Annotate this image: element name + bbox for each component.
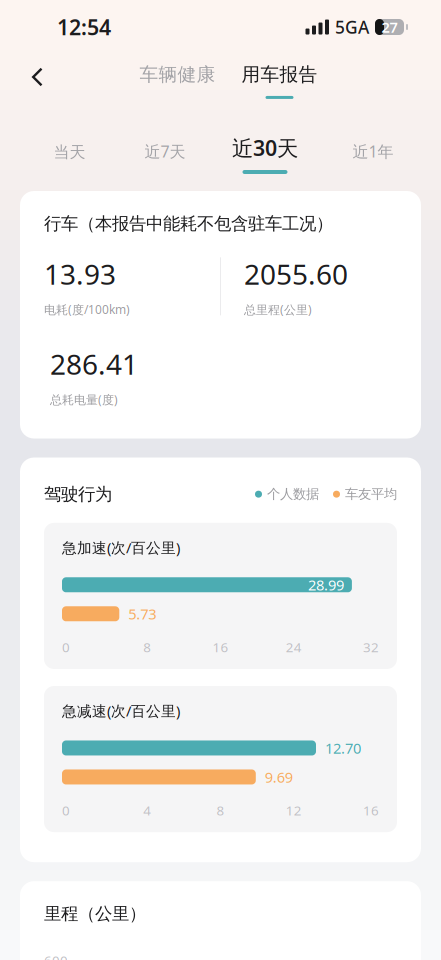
button[interactable]: 近30天: [210, 100, 320, 191]
staticText: 行车（本报告中能耗不包含驻车工况）: [44, 213, 333, 234]
staticText: 16: [363, 801, 379, 819]
staticText: 近7天: [144, 141, 185, 162]
staticText: 总里程(公里): [244, 301, 312, 317]
button[interactable]: 近7天: [120, 100, 210, 191]
staticText: 16: [212, 638, 228, 656]
staticText: 驾驶行为: [44, 483, 112, 505]
staticText: 286.41: [50, 345, 138, 383]
staticText: 12: [286, 801, 302, 819]
staticText: 27: [381, 17, 397, 37]
staticText: 4: [143, 801, 151, 819]
staticText: 28.99: [308, 575, 344, 595]
staticText: 5GA: [335, 15, 369, 38]
staticText: 0: [62, 801, 70, 819]
staticText: 当天: [53, 142, 85, 162]
staticText: 电耗(度/100km): [44, 301, 130, 317]
staticText: 0: [62, 638, 70, 656]
staticText: 600: [44, 951, 68, 960]
staticText: 车友平均: [345, 486, 397, 502]
staticText: 32: [363, 638, 379, 656]
staticText: 用车报告: [241, 63, 317, 86]
staticText: 里程（公里）: [44, 903, 146, 924]
staticText: 5.73: [128, 604, 156, 624]
staticText: 8: [143, 638, 151, 656]
button[interactable]: Back: [21, 56, 54, 97]
staticText: 24: [286, 638, 302, 656]
staticText: 车辆健康: [139, 63, 215, 86]
staticText: 急减速(次/百公里): [62, 701, 180, 720]
staticText: 8: [216, 801, 224, 819]
staticText: 9.69: [265, 767, 293, 787]
staticText: 个人数据: [267, 486, 319, 502]
button[interactable]: 近1年: [320, 100, 426, 191]
button[interactable]: 当天: [19, 100, 120, 191]
button[interactable]: 车辆健康: [126, 54, 228, 100]
staticText: 近30天: [232, 134, 298, 162]
staticText: 13.93: [44, 255, 116, 292]
staticText: 总耗电量(度): [50, 392, 118, 407]
staticText: 近1年: [352, 141, 393, 162]
staticText: 急加速(次/百公里): [62, 538, 180, 557]
button[interactable]: 用车报告: [228, 54, 330, 100]
staticText: 12.70: [325, 738, 361, 758]
staticText: 12:54: [57, 13, 111, 41]
staticText: 2055.60: [244, 255, 348, 292]
